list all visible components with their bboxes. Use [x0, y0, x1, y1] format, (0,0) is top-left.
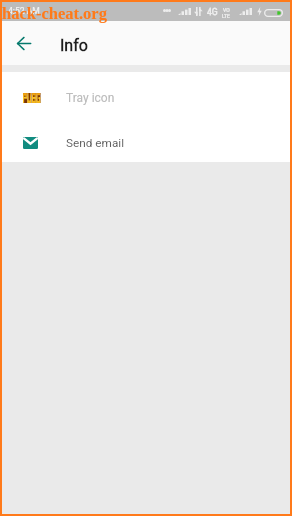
staticText: Tray icon [66, 91, 115, 105]
staticText: LTE [222, 13, 230, 19]
staticText: Info [60, 36, 88, 55]
staticText: Send email [66, 136, 125, 150]
staticText: VO [223, 7, 230, 13]
button[interactable]: Back [8, 27, 40, 59]
button[interactable]: Send email [2, 117, 290, 162]
staticText: hack-cheat.org [2, 4, 107, 22]
button[interactable]: Tray icon [2, 72, 290, 117]
staticText: 4:52 AM [8, 6, 40, 16]
staticText: 4G [207, 7, 218, 17]
